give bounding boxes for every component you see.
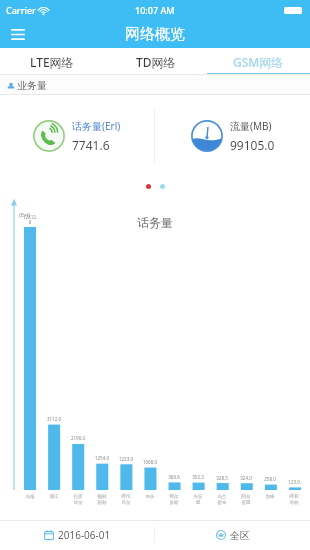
staticText: LTE网络	[30, 54, 74, 70]
staticText: 324.0	[234, 475, 258, 481]
staticText: 1068.0	[138, 459, 162, 465]
staticText: 全区	[230, 529, 250, 542]
staticText: Carrier	[6, 4, 36, 16]
staticText: 包头	[138, 494, 162, 500]
staticText: 赤峰	[258, 494, 282, 500]
staticText: 呼伦 贝尔	[114, 494, 138, 505]
staticText: 乌海	[18, 494, 42, 500]
staticText: 123.0	[282, 479, 306, 485]
staticText: 3112.0	[42, 416, 66, 422]
staticText: 网络概览	[125, 25, 185, 44]
staticText: 兴安 盟	[186, 494, 210, 505]
button[interactable]: GSM网络	[207, 48, 310, 75]
button[interactable]: 全区	[155, 520, 310, 550]
staticText: 乌兰 察布	[210, 494, 234, 505]
staticText: 话务量	[137, 215, 173, 230]
staticText: 10:07 AM	[135, 4, 175, 16]
staticText: 1223.0	[114, 456, 138, 462]
button[interactable]: Data traffic	[155, 95, 310, 177]
staticText: 328.5	[210, 475, 234, 481]
staticText: 业务量	[17, 79, 47, 92]
button[interactable]: 2016-06-01	[0, 520, 154, 550]
staticText: 话务量(Erl)	[72, 119, 121, 133]
button[interactable]	[146, 184, 151, 189]
staticText: 7741.6	[72, 137, 110, 153]
staticText: 99105.0	[230, 137, 275, 153]
button[interactable]	[160, 184, 165, 189]
button[interactable]: TD网络	[104, 48, 207, 75]
staticText: (Erl)	[19, 211, 30, 219]
staticText: 2190.0	[66, 435, 90, 441]
other: Data traffic	[191, 120, 223, 152]
staticText: 鄂尔 多斯	[162, 494, 186, 505]
staticText: 258.0	[258, 476, 282, 482]
staticText: 360.6	[162, 474, 186, 480]
staticText: TD网络	[136, 54, 176, 70]
button[interactable]: Voice traffic	[0, 95, 154, 177]
staticText: 2016-06-01	[58, 528, 111, 542]
other: Voice traffic	[33, 120, 65, 152]
staticText: 1254.0	[90, 455, 114, 461]
staticText: 呼和 浩特	[282, 494, 306, 505]
staticText: 阿拉 善盟	[234, 494, 258, 505]
staticText: 通辽	[42, 494, 66, 500]
staticText: GSM网络	[233, 54, 284, 70]
staticText: 12512. 8	[18, 214, 42, 225]
button[interactable]: LTE网络	[0, 48, 104, 75]
staticText: 流量(MB)	[230, 119, 272, 133]
staticText: 352.3	[186, 474, 210, 480]
staticText: 巴彦 淖尔	[66, 494, 90, 505]
button[interactable]: Menu	[5, 21, 31, 47]
staticText: 锡林 郭勒	[90, 494, 114, 505]
